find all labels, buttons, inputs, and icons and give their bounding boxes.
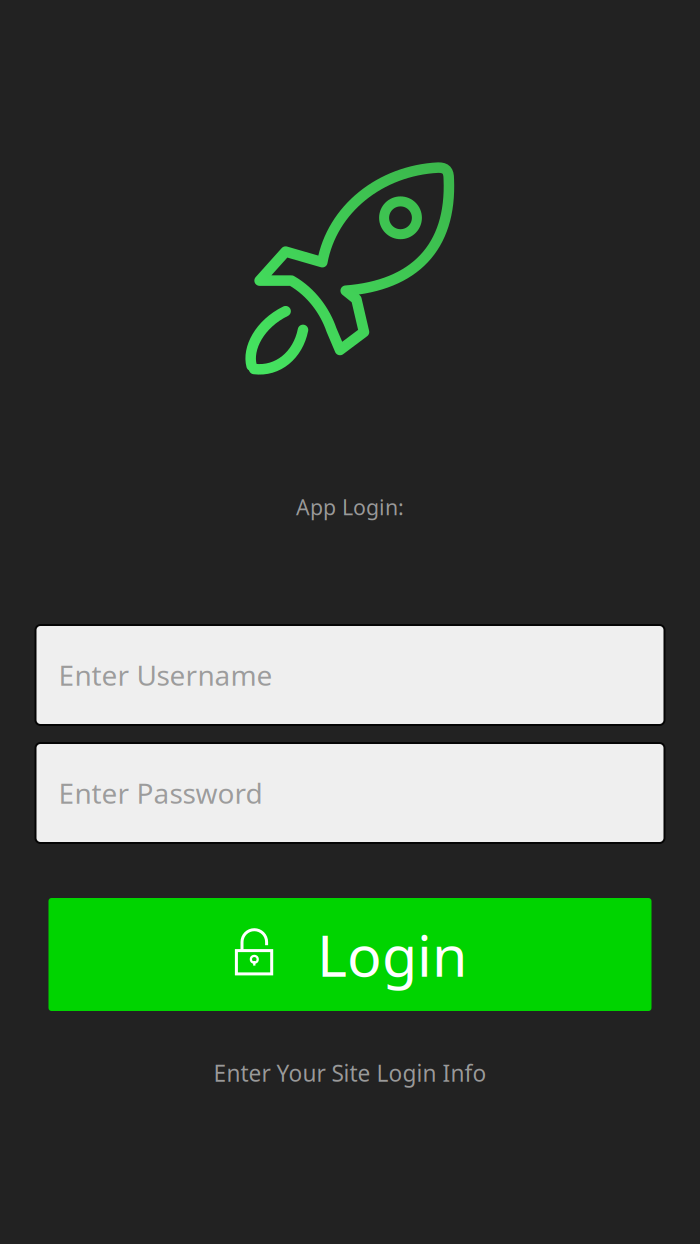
button[interactable]: Login bbox=[48, 898, 651, 1011]
button[interactable]: Enter Password bbox=[35, 743, 664, 843]
staticText: Login bbox=[317, 916, 467, 992]
staticText: Enter Your Site Login Info bbox=[213, 1058, 486, 1088]
staticText: App Login: bbox=[296, 493, 404, 521]
staticText: Enter Username bbox=[58, 656, 272, 694]
button[interactable]: Enter Username bbox=[35, 625, 664, 725]
staticText: Enter Password bbox=[58, 774, 262, 812]
